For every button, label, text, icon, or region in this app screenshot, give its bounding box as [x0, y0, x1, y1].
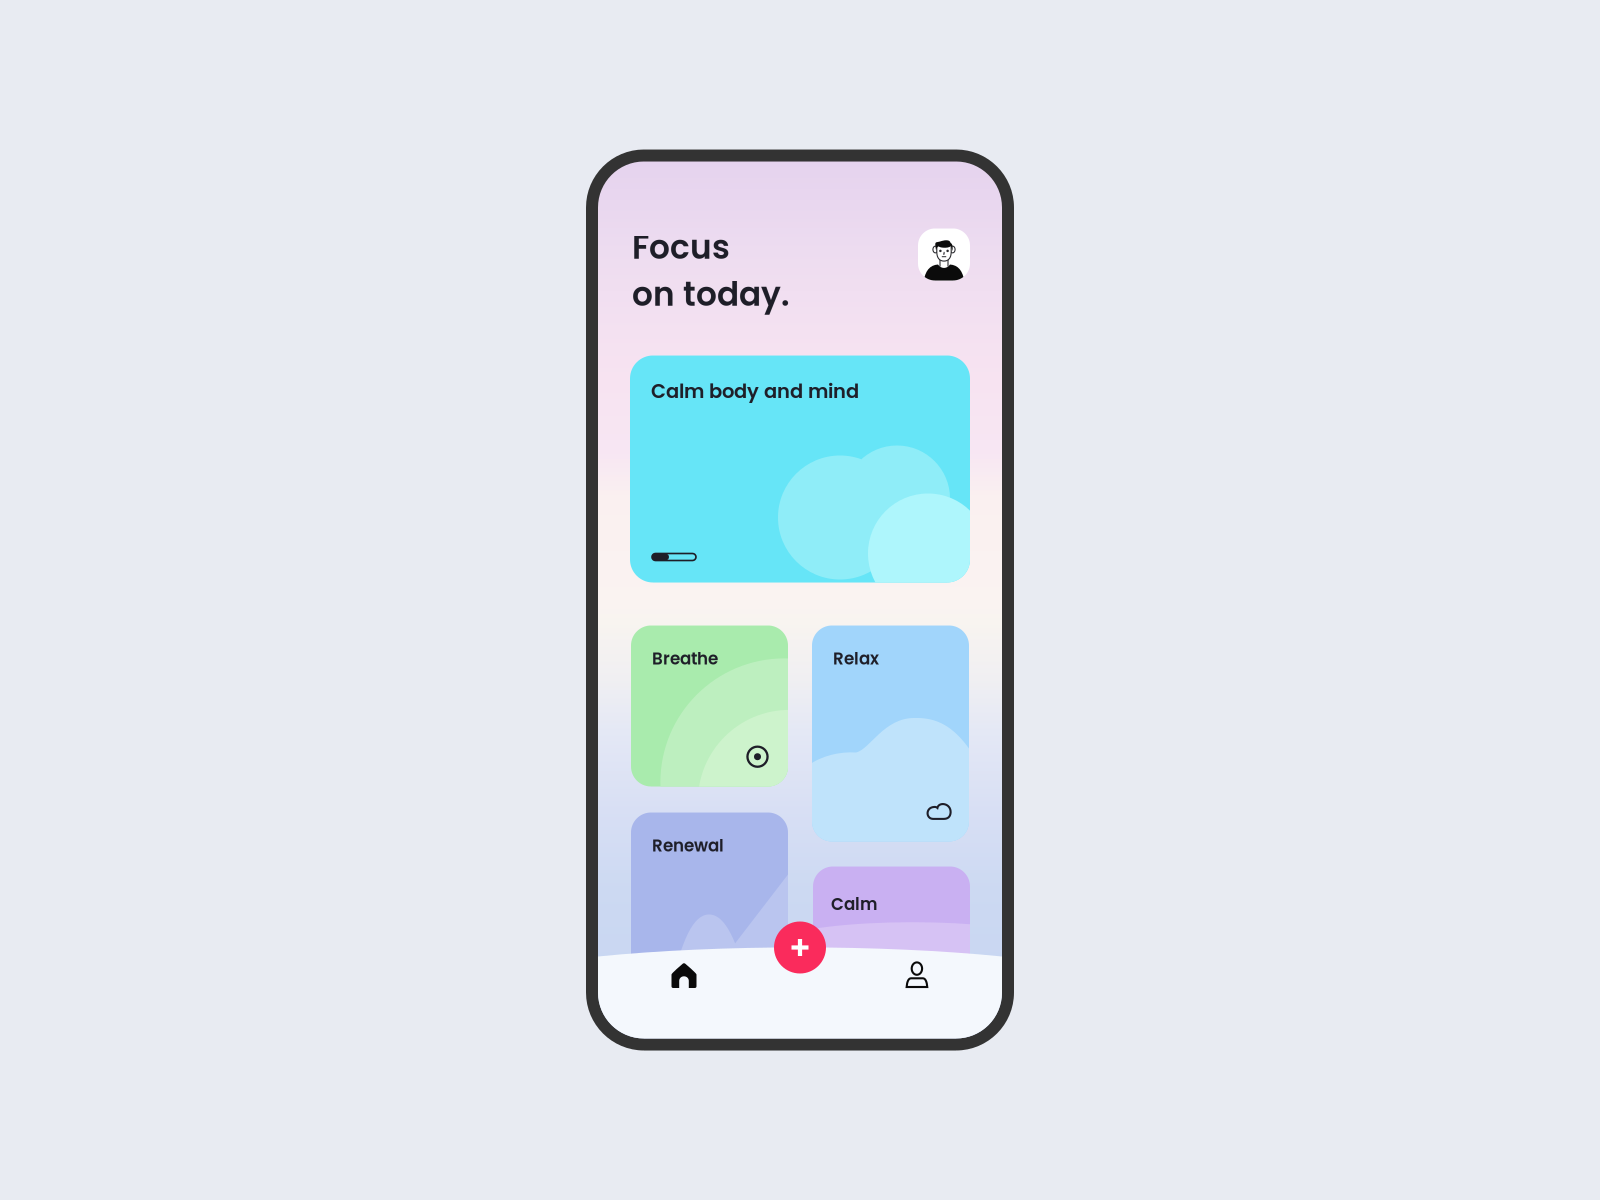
staticText: Calm body and mind — [651, 377, 859, 405]
button[interactable]: Profile — [890, 949, 944, 999]
staticText: on today. — [632, 271, 789, 317]
staticText: Breathe — [652, 647, 718, 670]
button[interactable]: Profile — [918, 228, 970, 280]
staticText: Calm — [831, 892, 877, 916]
button[interactable]: Relax — [812, 625, 969, 841]
staticText: Focus — [632, 224, 730, 270]
button[interactable]: Add — [774, 921, 826, 973]
button[interactable]: Home — [657, 950, 711, 1000]
button[interactable]: Renewal — [631, 812, 788, 982]
button[interactable]: Calm — [813, 866, 970, 986]
button[interactable]: Calm body and mind — [630, 355, 970, 582]
button[interactable]: Breathe — [631, 625, 788, 786]
staticText: Renewal — [652, 834, 724, 857]
staticText: Relax — [833, 647, 879, 670]
